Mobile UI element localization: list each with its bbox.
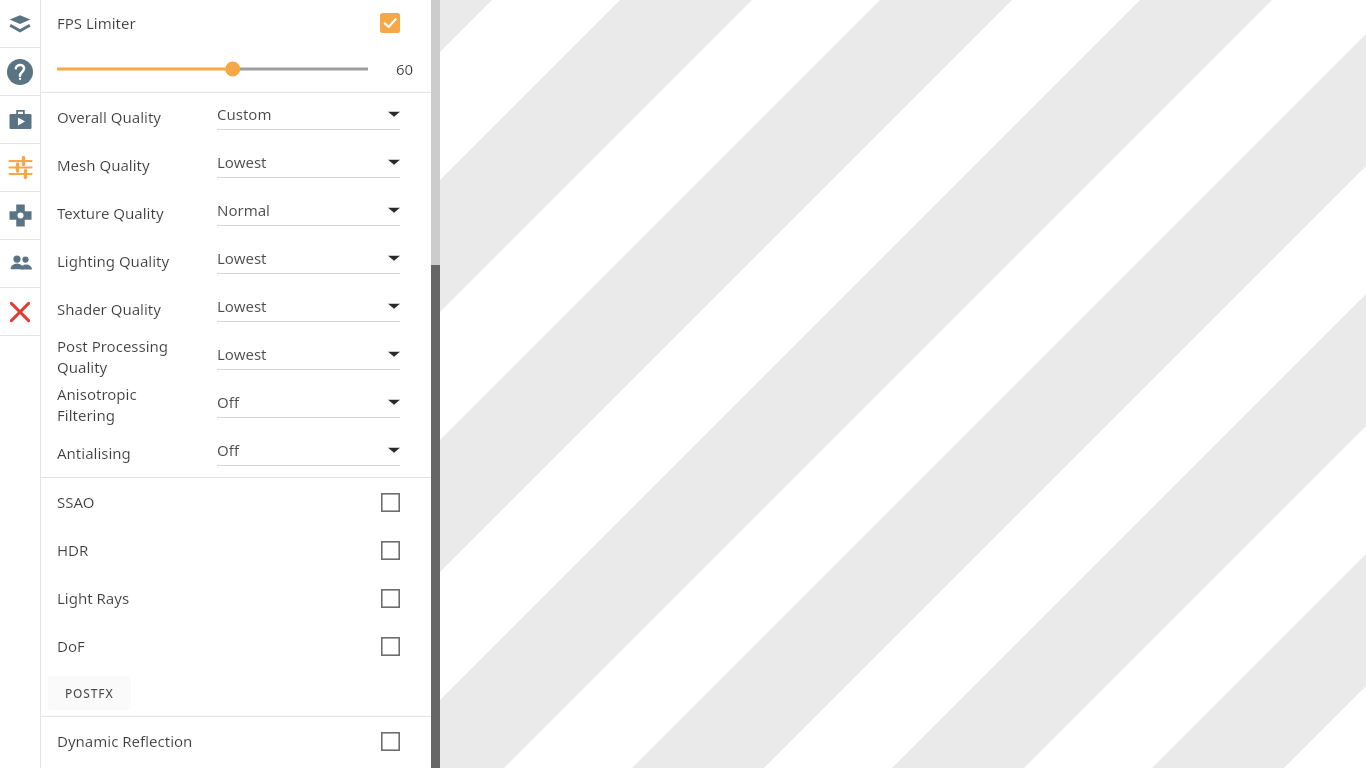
button[interactable]: SSAO bbox=[0, 478, 432, 526]
staticText: 60 bbox=[396, 59, 414, 79]
staticText: SSAO bbox=[57, 492, 381, 512]
staticText: Lowest bbox=[217, 344, 388, 364]
button[interactable]: Help bbox=[0, 48, 40, 95]
button[interactable]: Shader Quality bbox=[0, 285, 432, 333]
staticText: Off bbox=[217, 440, 388, 460]
staticText: Overall Quality bbox=[57, 107, 217, 127]
button[interactable]: Settings bbox=[0, 144, 40, 191]
staticText: Lighting Quality bbox=[57, 251, 217, 271]
staticText: Custom bbox=[217, 104, 388, 124]
staticText: Lowest bbox=[217, 152, 388, 172]
staticText: Lowest bbox=[217, 296, 388, 316]
button[interactable]: Mesh Quality bbox=[0, 141, 432, 189]
button[interactable]: Media bbox=[0, 96, 40, 143]
button[interactable] bbox=[57, 58, 368, 80]
staticText: Dynamic Reflection bbox=[57, 731, 381, 751]
button[interactable]: Layers bbox=[0, 0, 40, 47]
button[interactable]: DoF bbox=[0, 622, 432, 670]
button[interactable]: POSTFX bbox=[48, 676, 131, 710]
staticText: DoF bbox=[57, 636, 381, 656]
button[interactable]: Players bbox=[0, 240, 40, 287]
staticText: Mesh Quality bbox=[57, 155, 217, 175]
button[interactable]: Lighting Quality bbox=[0, 237, 432, 285]
button[interactable]: Texture Quality bbox=[0, 189, 432, 237]
button[interactable]: Overall Quality bbox=[0, 93, 432, 141]
staticText: Texture Quality bbox=[57, 203, 217, 223]
button[interactable]: Dynamic Reflection bbox=[0, 717, 432, 765]
staticText: Antialising bbox=[57, 443, 217, 463]
staticText: FPS Limiter bbox=[57, 13, 380, 33]
staticText: Normal bbox=[217, 200, 388, 220]
button[interactable]: Anisotropic Filtering bbox=[0, 381, 432, 429]
staticText: POSTFX bbox=[65, 685, 114, 701]
staticText: Shader Quality bbox=[57, 299, 217, 319]
button[interactable]: Antialising bbox=[0, 429, 432, 477]
button[interactable]: HDR bbox=[0, 526, 432, 574]
button[interactable]: Light Rays bbox=[0, 574, 432, 622]
button[interactable]: FPS Limiter bbox=[0, 0, 432, 45]
staticText: Post Processing Quality bbox=[57, 336, 217, 378]
staticText: Off bbox=[217, 392, 388, 412]
staticText: HDR bbox=[57, 540, 381, 560]
staticText: Light Rays bbox=[57, 588, 381, 608]
staticText: Anisotropic Filtering bbox=[57, 384, 217, 426]
button[interactable]: Close bbox=[0, 288, 40, 335]
staticText: Lowest bbox=[217, 248, 388, 268]
button[interactable]: Controls bbox=[0, 192, 40, 239]
button[interactable]: Post Processing Quality bbox=[0, 333, 432, 381]
